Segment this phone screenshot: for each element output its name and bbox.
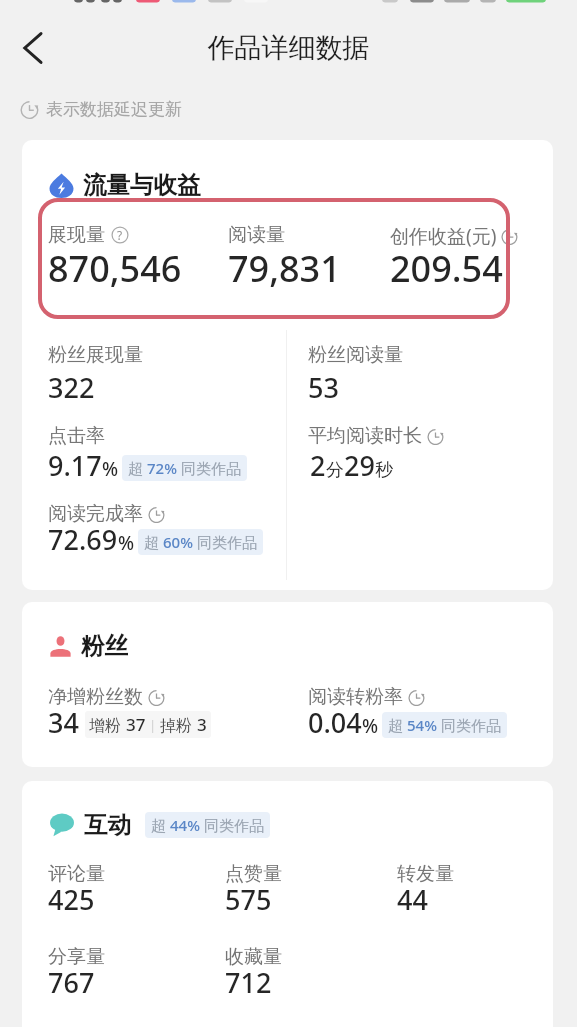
staticText: 评论量 — [48, 862, 105, 886]
staticText: 流量与收益 — [83, 170, 201, 200]
staticText: 秒 — [375, 459, 393, 482]
staticText: 收藏量 — [225, 945, 282, 969]
staticText: 互动 — [84, 810, 131, 840]
staticText: 79,831 — [228, 244, 341, 293]
staticText: 点赞量 — [225, 862, 282, 886]
staticText: 72.69 — [48, 521, 118, 558]
staticText: 870,546 — [48, 244, 182, 293]
staticText: 44% — [170, 815, 200, 835]
staticText: 转发量 — [397, 862, 454, 886]
staticText: 粉丝 — [81, 631, 128, 661]
staticText: 54% — [407, 715, 437, 735]
staticText: 425 — [48, 881, 95, 918]
staticText: % — [362, 713, 379, 739]
staticText: 净增粉丝数 — [48, 685, 143, 709]
staticText: 平均阅读时长 — [308, 424, 422, 448]
staticText: 掉粉 — [160, 714, 197, 736]
staticText: 超 — [128, 458, 147, 478]
staticText: 44 — [397, 881, 428, 918]
staticText: 60% — [163, 532, 193, 552]
staticText: | — [149, 716, 157, 734]
staticText: 作品详细数据 — [0, 31, 577, 65]
staticText: 分享量 — [48, 945, 105, 969]
staticText: 72% — [147, 458, 177, 478]
staticText: 同类作品 — [177, 458, 241, 478]
staticText: 0.04 — [308, 704, 362, 741]
staticText: 712 — [225, 964, 272, 1001]
staticText: 53 — [308, 369, 339, 406]
staticText: 209.54 — [390, 244, 503, 293]
staticText: 同类作品 — [193, 532, 257, 552]
staticText: 34 — [48, 704, 79, 741]
staticText: 阅读量 — [228, 223, 285, 247]
staticText: 阅读完成率 — [48, 502, 143, 526]
button[interactable]: Back — [13, 26, 57, 70]
staticText: % — [118, 530, 135, 556]
staticText: 575 — [225, 881, 272, 918]
staticText: 增粉 — [89, 714, 126, 736]
staticText: 超 — [144, 532, 163, 552]
staticText: 点击率 — [48, 424, 105, 448]
staticText: 9.17 — [48, 447, 102, 484]
staticText: 同类作品 — [200, 815, 264, 835]
staticText: 同类作品 — [437, 715, 501, 735]
staticText: 超 — [151, 815, 170, 835]
staticText: 创作收益(元) — [390, 223, 497, 249]
staticText: 3 — [197, 713, 207, 736]
staticText: 粉丝阅读量 — [308, 343, 403, 367]
staticText: 展现量 — [48, 223, 105, 247]
staticText: 37 — [126, 713, 146, 736]
staticText: 阅读转粉率 — [308, 685, 403, 709]
staticText: % — [102, 456, 119, 482]
staticText: 超 — [388, 715, 407, 735]
staticText: 2 — [310, 447, 326, 484]
staticText: 粉丝展现量 — [48, 343, 143, 367]
staticText: 322 — [48, 369, 95, 406]
staticText: 29 — [344, 447, 375, 484]
staticText: 分 — [326, 459, 344, 482]
staticText: 表示数据延迟更新 — [46, 99, 182, 120]
staticText: 767 — [48, 964, 95, 1001]
staticText: ? — [117, 227, 123, 243]
